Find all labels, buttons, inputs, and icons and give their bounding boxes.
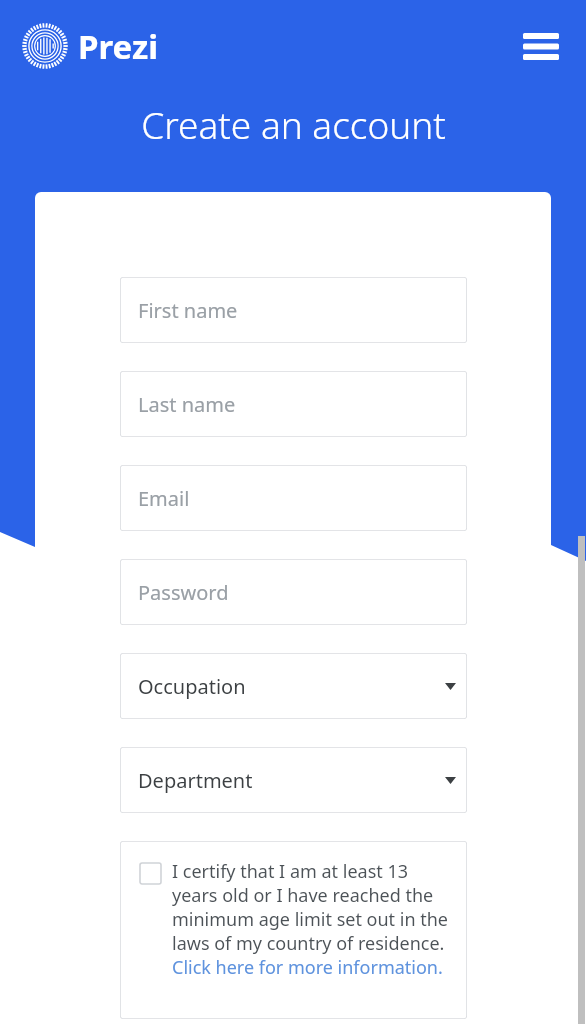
button[interactable]: Occupation <box>120 653 467 719</box>
button[interactable]: Password <box>120 559 467 625</box>
button[interactable]: Certify age checkbox <box>120 841 467 1019</box>
staticText: Prezi <box>78 24 159 69</box>
button[interactable]: Department <box>120 747 467 813</box>
staticText: Password <box>138 579 229 606</box>
staticText: Email <box>138 485 190 512</box>
staticText: Create an account <box>141 99 446 149</box>
staticText: First name <box>138 297 238 324</box>
button[interactable]: Prezi <box>18 19 163 73</box>
button[interactable]: Menu <box>514 19 568 73</box>
button[interactable]: First name <box>120 277 467 343</box>
button[interactable]: Last name <box>120 371 467 437</box>
staticText: I certify that I am at least 13 years ol… <box>172 859 455 979</box>
button[interactable]: Email <box>120 465 467 531</box>
button[interactable]: Certify age checkbox <box>140 863 161 884</box>
staticText: Department <box>138 767 253 794</box>
staticText: Occupation <box>138 673 246 700</box>
staticText: Last name <box>138 391 236 418</box>
